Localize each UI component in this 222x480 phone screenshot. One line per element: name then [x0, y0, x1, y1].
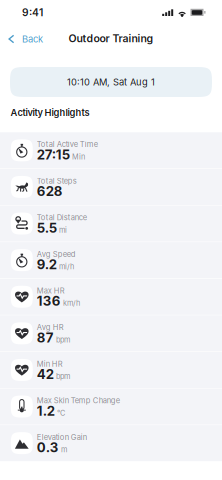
button[interactable]: Avg Speed [0, 242, 222, 278]
staticText: Min HR [37, 359, 63, 368]
staticText: 9:41 [22, 6, 43, 19]
staticText: 5.5 [37, 220, 57, 236]
button[interactable]: Max HR [0, 279, 222, 315]
staticText: 27:15 [37, 147, 70, 163]
staticText: Max HR [37, 286, 65, 295]
staticText: 9.2 [37, 256, 57, 272]
staticText: Outdoor Training [68, 32, 153, 45]
staticText: mi [59, 225, 67, 234]
button[interactable]: Total Distance [0, 205, 222, 242]
staticText: 0.3 [37, 439, 59, 455]
staticText: 87 [37, 330, 54, 346]
staticText: Elevation Gain [37, 432, 87, 442]
staticText: 1.2 [37, 403, 55, 419]
button[interactable]: Avg HR [0, 315, 222, 351]
staticText: bpm [56, 335, 70, 344]
staticText: Back [22, 33, 43, 45]
staticText: 136 [37, 293, 61, 309]
button[interactable]: Max Skin Temp Change [0, 388, 222, 425]
staticText: 42 [37, 366, 54, 382]
staticText: km/h [63, 299, 80, 308]
staticText: mi/h [59, 262, 74, 271]
staticText: 628 [37, 183, 63, 199]
staticText: Total Active Time [37, 140, 98, 149]
staticText: Total Steps [37, 176, 77, 185]
staticText: 10:10 AM, Sat Aug 1 [67, 76, 155, 88]
staticText: °C [57, 408, 65, 417]
button[interactable]: Min HR [0, 352, 222, 388]
staticText: m [61, 445, 67, 454]
staticText: bpm [56, 372, 70, 381]
staticText: Activity Highlights [10, 107, 89, 118]
staticText: Avg HR [37, 323, 64, 332]
staticText: Total Distance [37, 213, 87, 222]
button[interactable]: Back [0, 29, 52, 49]
staticText: Avg Speed [37, 249, 76, 259]
button[interactable]: Elevation Gain [0, 425, 222, 461]
staticText: Min [72, 152, 85, 161]
staticText: Max Skin Temp Change [37, 396, 120, 405]
button[interactable]: Total Steps [0, 169, 222, 205]
button[interactable]: Total Active Time [0, 132, 222, 168]
